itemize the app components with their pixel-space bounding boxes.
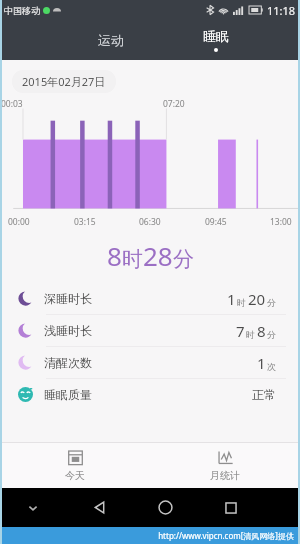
staticText: 正常 — [252, 387, 276, 402]
staticText: 00:00 — [8, 216, 30, 228]
staticText: 20 — [248, 289, 266, 309]
button[interactable]: 2015年02月27日 — [12, 70, 116, 93]
staticText: 2015年02月27日 — [22, 74, 106, 89]
button[interactable]: Home — [132, 488, 198, 527]
staticText: 11:18 — [267, 3, 296, 18]
other: Hide — [27, 502, 39, 514]
button[interactable]: 清醒次数 — [14, 347, 286, 378]
button[interactable]: 浅睡时长 — [14, 315, 286, 346]
staticText: 06:30 — [139, 216, 161, 228]
button[interactable]: Recents — [198, 488, 264, 527]
button[interactable]: 睡眠质量 — [14, 379, 286, 410]
staticText: 8 — [257, 321, 266, 341]
button[interactable]: 运动 — [58, 20, 163, 60]
button[interactable]: 月统计 — [150, 442, 300, 488]
staticText: 时 — [122, 246, 143, 272]
staticText: http://www.vipcn.com[清风网络]提供 — [158, 530, 294, 541]
staticText: 分 — [173, 246, 194, 272]
staticText: 运动 — [98, 32, 124, 48]
staticText: 28 — [143, 238, 173, 273]
staticText: 7 — [236, 321, 245, 341]
staticText: 睡眠质量 — [44, 387, 92, 402]
button[interactable]: 今天 — [0, 442, 150, 488]
staticText: 清醒次数 — [44, 355, 92, 370]
staticText: 1 — [227, 289, 236, 309]
staticText: 13:00 — [270, 216, 292, 228]
staticText: 时 — [237, 297, 246, 308]
staticText: 00:03 — [1, 98, 23, 110]
staticText: 今天 — [65, 469, 85, 482]
staticText: 中国移动 — [4, 5, 40, 16]
staticText: 03:15 — [74, 216, 96, 228]
button[interactable]: Back — [66, 488, 132, 527]
button[interactable]: 深睡时长 — [14, 283, 286, 314]
staticText: 1 — [257, 353, 266, 373]
staticText: 分 — [267, 329, 276, 340]
staticText: 次 — [267, 361, 276, 372]
staticText: 分 — [267, 297, 276, 308]
staticText: 07:20 — [163, 98, 185, 110]
staticText: 8 — [107, 238, 122, 273]
staticText: 睡眠 — [203, 28, 229, 44]
staticText: 月统计 — [210, 469, 240, 482]
staticText: 深睡时长 — [44, 291, 92, 306]
staticText: 09:45 — [205, 216, 227, 228]
button[interactable]: 睡眠 — [163, 20, 268, 60]
staticText: 时 — [246, 329, 255, 340]
staticText: 浅睡时长 — [44, 323, 92, 338]
